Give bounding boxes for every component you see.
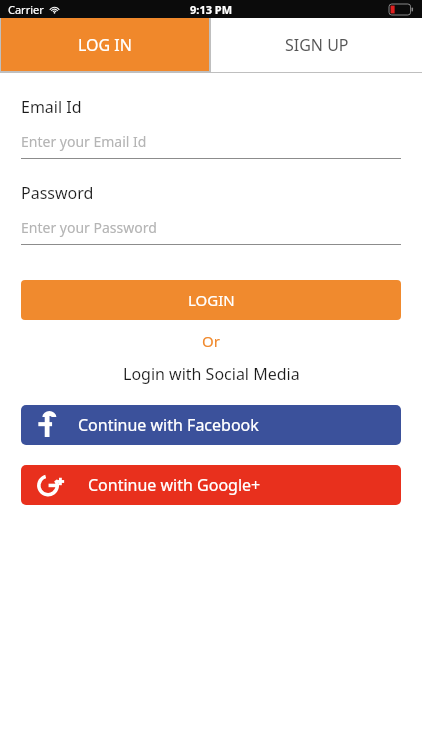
staticText: SIGN UP [285,34,349,56]
staticText: Enter your Email Id [21,132,147,151]
staticText: LOGIN [188,290,235,310]
staticText: Or [202,331,220,351]
staticText: Continue with Facebook [78,414,259,436]
button[interactable]: Continue with Facebook [21,405,401,445]
staticText: Enter your Password [21,218,157,237]
staticText: Continue with Google+ [88,474,261,496]
staticText: 9:13 PM [190,2,233,17]
button[interactable]: Continue with Google+ [21,465,401,505]
button[interactable]: LOG IN [1,18,209,71]
staticText: Email Id [21,96,82,118]
staticText: Password [21,182,94,204]
button[interactable]: SIGN UP [211,18,422,72]
staticText: LOG IN [78,34,132,56]
staticText: Login with Social Media [123,363,300,385]
button[interactable]: LOGIN [21,280,401,320]
staticText: Carrier [8,2,44,17]
